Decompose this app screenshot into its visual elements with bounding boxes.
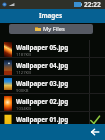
staticText: 1127KB (16, 70, 31, 76)
button[interactable]: My Files (9, 24, 93, 34)
staticText: Wallpaper 02.jpg (16, 97, 69, 106)
staticText: Wallpaper 01.jpg (16, 115, 69, 124)
staticText: My Files (43, 25, 65, 33)
button[interactable]: Selected (89, 114, 101, 126)
staticText: 22:22 (84, 0, 101, 9)
staticText: Images (39, 11, 63, 20)
button[interactable]: Wallpaper 03.jpg (0, 76, 105, 94)
staticText: Wallpaper 03.jpg (16, 79, 69, 88)
button[interactable]: Wallpaper 01.jpg (0, 112, 105, 130)
staticText: Wallpaper 04.jpg (16, 61, 69, 70)
staticText: 900KB (16, 88, 29, 94)
staticText: 1187KB (16, 52, 31, 58)
button[interactable]: Wallpaper 05.jpg (0, 40, 105, 58)
button[interactable]: Wallpaper 04.jpg (0, 58, 105, 76)
staticText: Wallpaper 05.jpg (16, 43, 69, 52)
staticText: 1034KB (16, 106, 31, 112)
button[interactable]: Wallpaper 02.jpg (0, 94, 105, 112)
button[interactable]: Back (88, 125, 102, 139)
